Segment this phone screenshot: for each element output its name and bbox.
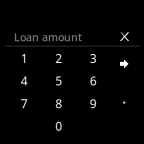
staticText: 7 <box>21 95 28 111</box>
staticText: 5 <box>55 73 62 89</box>
button[interactable]: Clear <box>116 29 132 45</box>
staticText: 8 <box>55 95 62 111</box>
staticText: 2 <box>55 50 62 66</box>
button[interactable]: 3 <box>76 47 110 70</box>
staticText: 6 <box>90 73 97 89</box>
staticText: 3 <box>90 50 97 66</box>
button[interactable]: 0 <box>41 115 76 137</box>
staticText: Loan amount <box>14 30 82 44</box>
button[interactable]: 4 <box>7 70 41 92</box>
button[interactable]: Submit <box>110 47 144 70</box>
button[interactable]: 2 <box>41 47 76 70</box>
button[interactable]: 8 <box>41 92 76 115</box>
button[interactable]: Loan amount <box>14 29 82 45</box>
staticText: 0 <box>55 118 62 134</box>
button[interactable]: 5 <box>41 70 76 92</box>
button[interactable]: 7 <box>7 92 41 115</box>
button[interactable]: 9 <box>76 92 110 115</box>
button[interactable]: 1 <box>7 47 41 70</box>
staticText: 4 <box>21 73 28 89</box>
staticText: 9 <box>90 95 97 111</box>
staticText: 1 <box>21 50 28 66</box>
button[interactable]: 6 <box>76 70 110 92</box>
button[interactable]: Decimal point <box>110 92 144 115</box>
